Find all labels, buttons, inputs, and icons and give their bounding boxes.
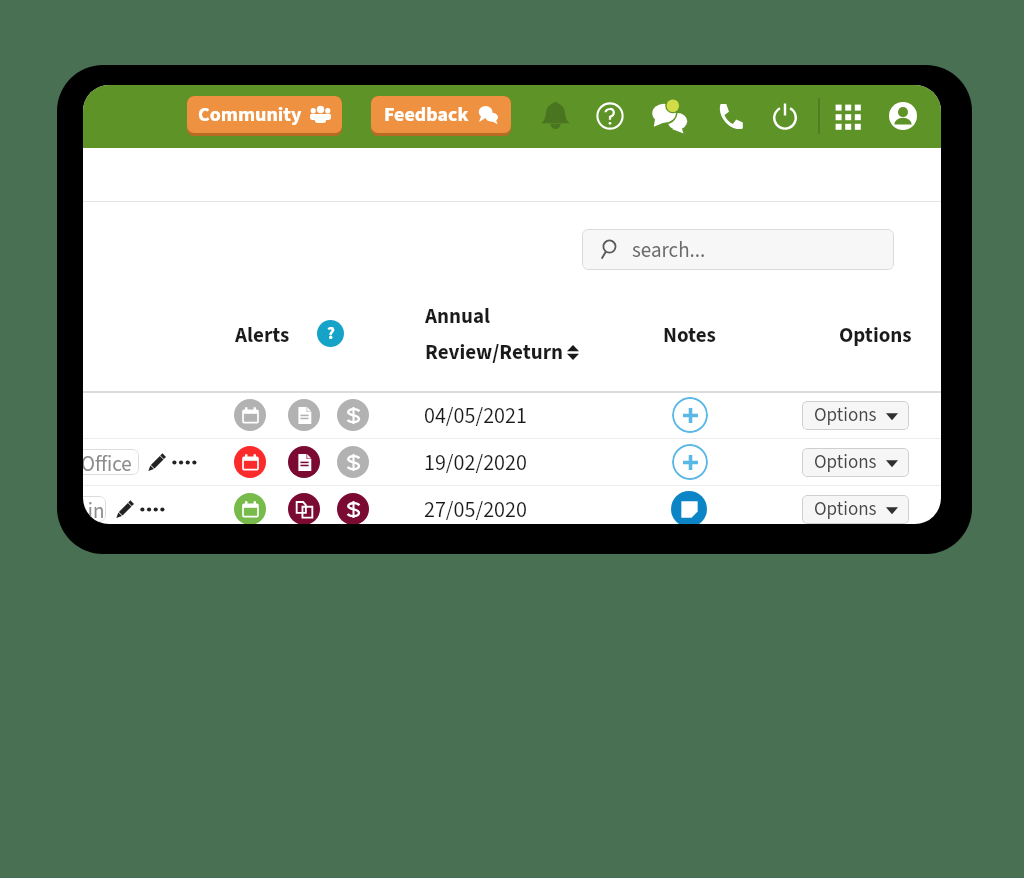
button[interactable]: Log out (762, 93, 808, 139)
button[interactable]: Community (187, 96, 342, 136)
button[interactable]: Notifications (532, 93, 578, 139)
button[interactable]: What are alerts? (317, 320, 344, 347)
staticText: Notes (663, 320, 716, 350)
button[interactable]: search... (582, 229, 894, 270)
button[interactable]: Call (706, 93, 752, 139)
staticText: ? (327, 322, 335, 346)
button[interactable]: Messages (646, 93, 692, 139)
button[interactable]: Help (587, 93, 633, 139)
button[interactable]: Apps (824, 93, 870, 139)
staticText: Community (198, 101, 302, 129)
button[interactable]: Fees alert (337, 493, 369, 524)
button[interactable]: Main (83, 496, 106, 522)
button[interactable]: Fees alert (337, 399, 369, 431)
staticText: Feedback (384, 101, 469, 129)
button[interactable]: Edit (116, 500, 134, 518)
staticText: Options (814, 449, 877, 476)
button[interactable]: Options (802, 448, 909, 477)
staticText: Review/Return (425, 337, 563, 367)
button[interactable]: Review date alert (234, 399, 266, 431)
button[interactable]: Review/Return (425, 337, 579, 367)
button[interactable]: Documents alert (288, 399, 320, 431)
button[interactable]: Edit (148, 453, 166, 471)
button[interactable]: Account (880, 93, 926, 139)
button[interactable]: More (173, 450, 196, 474)
button[interactable]: Fees alert (337, 446, 369, 478)
staticText: 04/05/2021 (424, 400, 527, 431)
staticText: 27/05/2020 (424, 494, 527, 524)
button[interactable]: Office (83, 449, 139, 475)
button[interactable]: Options (802, 495, 909, 524)
button[interactable]: Options (802, 401, 909, 430)
staticText: Alerts (235, 320, 290, 350)
staticText: Options (814, 496, 877, 523)
button[interactable]: Documents alert (288, 446, 320, 478)
button[interactable]: More (141, 497, 164, 521)
button[interactable]: Review date alert (234, 446, 266, 478)
button[interactable]: Documents alert (288, 493, 320, 524)
button[interactable]: Feedback (371, 96, 511, 136)
staticText: 19/02/2020 (424, 447, 527, 478)
button[interactable]: View note (671, 491, 707, 524)
button[interactable]: Add note (672, 444, 708, 480)
staticText: Office (83, 449, 132, 475)
button[interactable]: Review date alert (234, 493, 266, 524)
staticText: Main (83, 496, 105, 522)
button[interactable]: Add note (672, 397, 708, 433)
staticText: search... (632, 235, 706, 265)
staticText: Options (814, 402, 877, 429)
staticText: Annual (425, 301, 491, 331)
staticText: Options (839, 320, 912, 350)
